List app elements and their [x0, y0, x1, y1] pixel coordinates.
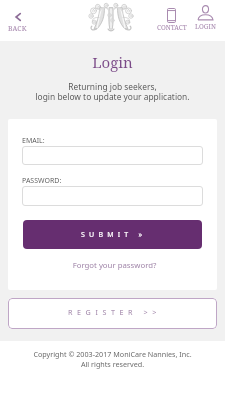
staticText: LOGIN [195, 22, 216, 31]
staticText: CONTACT [157, 23, 187, 32]
other: Login [197, 5, 214, 21]
staticText: BACK [8, 24, 27, 33]
staticText: Login [0, 52, 225, 72]
button[interactable]: S U B M I T » [23, 220, 202, 249]
button[interactable]: Forgot your password? [10, 260, 217, 271]
staticText: EMAIL: [22, 136, 45, 146]
button[interactable]: Login [189, 5, 221, 31]
staticText: Copyright © 2003-2017 MoniCare Nannies, … [0, 349, 225, 369]
button[interactable]: R E G I S T E R > > [8, 298, 217, 329]
staticText: R E G I S T E R > > [68, 307, 158, 317]
staticText: PASSWORD: [22, 176, 62, 186]
staticText: S U B M I T » [81, 230, 144, 240]
button[interactable]: Contact [154, 8, 189, 32]
button[interactable]: BACK [1, 13, 34, 33]
staticText: Returning job seekers, login below to up… [0, 81, 225, 103]
other: Contact [167, 8, 176, 23]
